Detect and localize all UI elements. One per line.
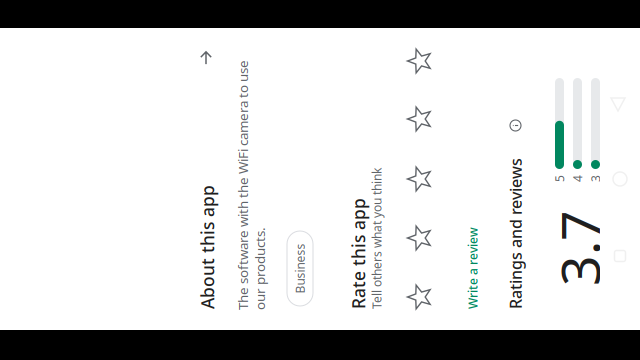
- staticText: Business: [205, 151, 255, 167]
- button[interactable]: Write a review: [190, 324, 280, 342]
- button[interactable]: Rate: [363, 262, 397, 296]
- button[interactable]: Rate: [303, 262, 337, 296]
- staticText: Rate this app: [190, 206, 301, 229]
- staticText: Tell others what you think: [190, 228, 331, 244]
- button[interactable]: Rate: [244, 262, 278, 296]
- staticText: About this app: [190, 55, 314, 78]
- staticText: Write a review: [190, 324, 272, 340]
- staticText: The software with the WiFi camera to use: [189, 93, 439, 111]
- staticText: our products.: [189, 110, 272, 128]
- button[interactable]: Rate: [185, 262, 219, 296]
- button[interactable]: About this app: [169, 55, 471, 99]
- button[interactable]: Business: [193, 146, 268, 172]
- button[interactable]: Rate: [421, 262, 455, 296]
